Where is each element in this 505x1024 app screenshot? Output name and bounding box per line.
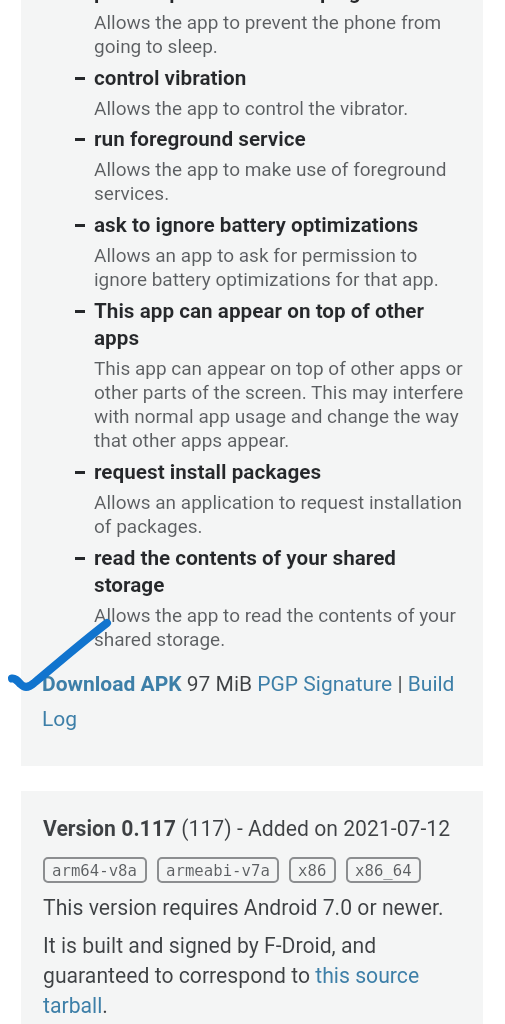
- staticText: Allows the app to control the vibrator.: [94, 97, 409, 119]
- button[interactable]: x86: [298, 861, 327, 879]
- staticText: Allows an application to request install…: [94, 491, 464, 538]
- staticText: Download APK 97 MiB PGP Signature | Buil…: [42, 672, 462, 731]
- staticText: request install packages: [94, 460, 322, 484]
- button[interactable]: x86_64: [355, 861, 412, 879]
- staticText: Allows the app to read the contents of y…: [94, 604, 464, 651]
- staticText: x86: [298, 861, 327, 879]
- staticText: prevent phone from sleeping: [94, 0, 361, 4]
- staticText: ask to ignore battery optimizations: [94, 213, 419, 237]
- staticText: arm64-v8a: [52, 861, 138, 879]
- staticText: It is built and signed by F-Droid, and g…: [43, 933, 463, 1018]
- staticText: This app can appear on top of other apps…: [94, 357, 464, 452]
- button[interactable]: ask to ignore battery optimizations: [73, 213, 464, 291]
- button[interactable]: run foreground service: [73, 127, 464, 205]
- button[interactable]: This app can appear on top of other apps: [73, 299, 464, 452]
- staticText: This app can appear on top of other apps: [94, 299, 464, 350]
- staticText: armeabi-v7a: [166, 861, 270, 879]
- staticText: Allows the app to make use of foreground…: [94, 158, 464, 205]
- button[interactable]: control vibration: [73, 66, 464, 119]
- staticText: This version requires Android 7.0 or new…: [43, 895, 444, 920]
- staticText: x86_64: [355, 861, 412, 879]
- staticText: read the contents of your shared storage: [94, 546, 464, 597]
- staticText: run foreground service: [94, 127, 306, 151]
- staticText: control vibration: [94, 66, 247, 90]
- staticText: Allows the app to prevent the phone from…: [94, 11, 464, 58]
- button[interactable]: armeabi-v7a: [166, 861, 270, 879]
- staticText: Allows an app to ask for permission to i…: [94, 244, 464, 291]
- button[interactable]: Download APK 97 MiB PGP Signature | Buil…: [42, 672, 462, 731]
- button[interactable]: arm64-v8a: [52, 861, 138, 879]
- button[interactable]: request install packages: [73, 460, 464, 538]
- staticText: Version 0.117 (117) - Added on 2021-07-1…: [43, 816, 451, 841]
- button[interactable]: read the contents of your shared storage: [73, 546, 464, 651]
- button[interactable]: prevent phone from sleeping: [73, 0, 464, 58]
